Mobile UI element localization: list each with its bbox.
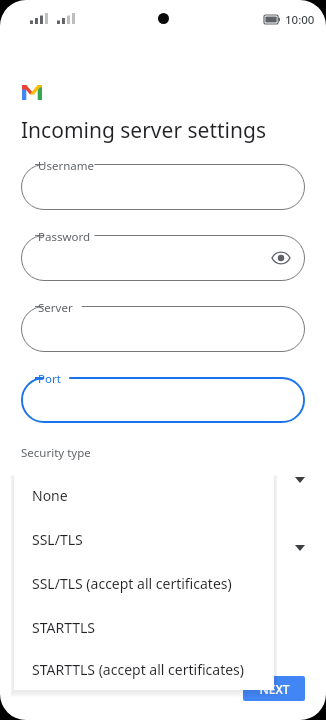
button[interactable]: Normal password	[21, 535, 305, 561]
staticText: Port	[38, 371, 61, 387]
staticText: Security type	[21, 445, 91, 461]
staticText: Password	[38, 229, 91, 245]
button[interactable]: Password	[21, 235, 305, 281]
staticText: STARTTLS	[32, 618, 96, 637]
button[interactable]: None	[21, 467, 305, 493]
button[interactable]: NEXT	[243, 676, 305, 701]
button[interactable]: STARTTLS	[14, 605, 274, 649]
staticText: None	[32, 486, 68, 505]
button[interactable]: Server	[21, 306, 305, 352]
button[interactable]: SSL/TLS (accept all certificates)	[14, 561, 274, 605]
button[interactable]: STARTTLS (accept all certificates)	[14, 649, 274, 690]
button[interactable]: Port	[21, 377, 305, 423]
button[interactable]: SSL/TLS	[14, 517, 274, 561]
button[interactable]: Show password	[269, 246, 293, 270]
staticText: SSL/TLS	[32, 530, 83, 549]
staticText: Normal password	[21, 538, 146, 558]
staticText: SSL/TLS (accept all certificates)	[32, 574, 232, 593]
staticText: Username	[38, 158, 94, 174]
staticText: Incoming server settings	[21, 116, 266, 145]
button[interactable]: None	[14, 473, 274, 517]
button[interactable]: Username	[21, 164, 305, 210]
staticText: STARTTLS (accept all certificates)	[32, 660, 244, 679]
staticText: Server	[38, 300, 73, 316]
staticText: NEXT	[259, 681, 290, 697]
staticText: 10:00	[285, 12, 315, 28]
